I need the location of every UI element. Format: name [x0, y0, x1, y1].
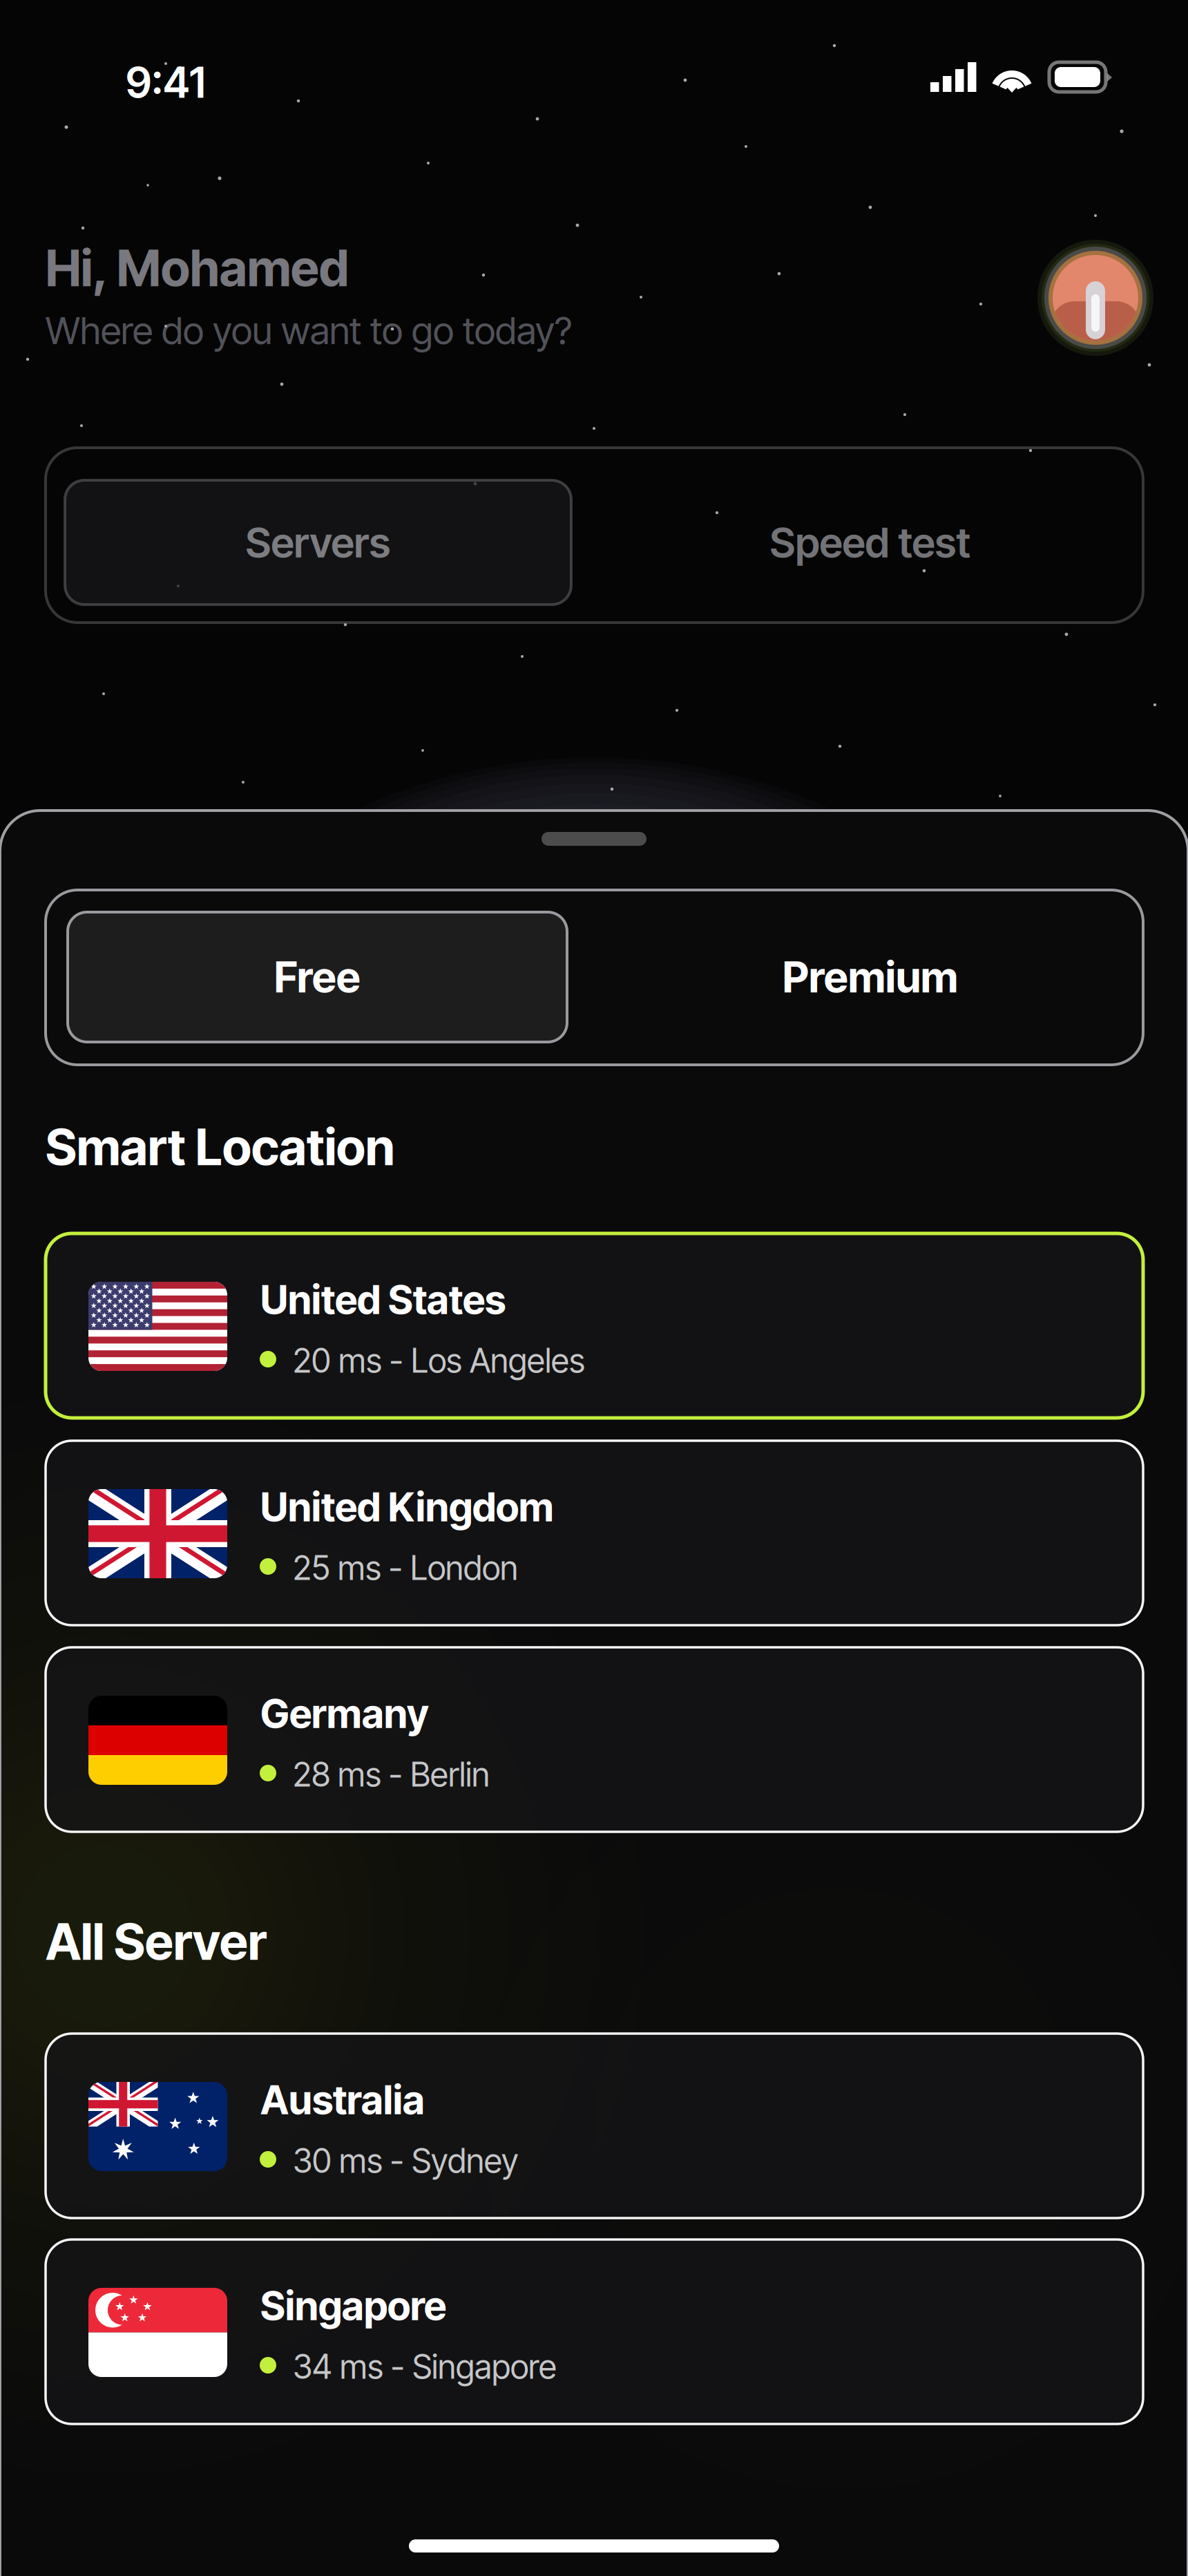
staticText: 9:41	[126, 57, 206, 108]
button[interactable]: Speed test	[620, 480, 1121, 605]
button[interactable]: Singapore	[46, 2239, 1143, 2424]
staticText: Smart Location	[46, 1117, 395, 1177]
staticText: Germany	[260, 1690, 429, 1738]
staticText: Speed test	[770, 517, 971, 568]
staticText: United States	[260, 1276, 506, 1324]
button[interactable]: United States	[46, 1233, 1143, 1418]
staticText: Hi, Mohamed	[46, 238, 349, 298]
staticText: Free	[274, 951, 361, 1003]
button[interactable]: Australia	[46, 2034, 1143, 2218]
staticText: 25 ms - London	[293, 1548, 518, 1588]
staticText: United Kingdom	[260, 1483, 554, 1531]
button[interactable]: Germany	[46, 1647, 1143, 1832]
button[interactable]: Profile	[1038, 240, 1153, 355]
staticText: Servers	[246, 517, 391, 568]
staticText: 34 ms - Singapore	[293, 2347, 557, 2387]
staticText: Australia	[260, 2076, 425, 2124]
staticText: All Server	[46, 1912, 267, 1972]
button[interactable]: United Kingdom	[46, 1441, 1143, 1625]
staticText: 28 ms - Berlin	[293, 1754, 490, 1795]
staticText: Premium	[783, 951, 958, 1003]
staticText: Singapore	[260, 2282, 446, 2330]
staticText: 20 ms - Los Angeles	[293, 1341, 585, 1381]
staticText: Where do you want to go today?	[46, 307, 572, 353]
staticText: 30 ms - Sydney	[293, 2141, 518, 2181]
button[interactable]: Free	[68, 912, 567, 1042]
button[interactable]: Servers	[65, 480, 571, 605]
button[interactable]: Premium	[620, 912, 1121, 1042]
